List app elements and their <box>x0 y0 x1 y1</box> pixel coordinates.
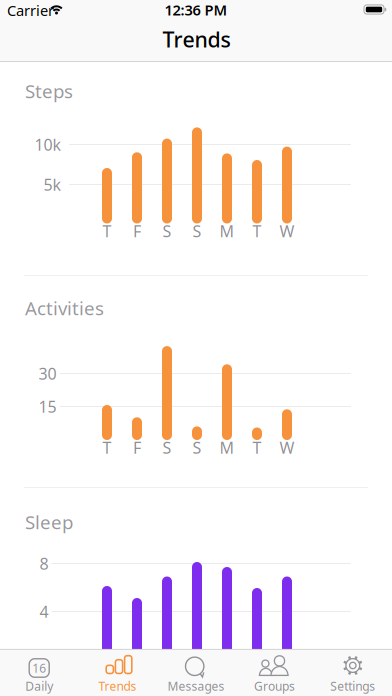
staticText: Carrier <box>7 0 54 20</box>
button[interactable]: Trends <box>78 649 157 696</box>
staticText: 5k <box>43 174 61 195</box>
staticText: 30 <box>38 363 56 384</box>
staticText: Activities <box>25 296 104 320</box>
staticText: S <box>192 220 201 242</box>
staticText: W <box>279 437 294 458</box>
staticText: 10k <box>34 134 61 155</box>
staticText: M <box>219 220 234 242</box>
staticText: S <box>162 220 171 242</box>
staticText: 16 <box>32 660 46 676</box>
staticText: M <box>219 437 234 458</box>
button[interactable]: 16 <box>0 649 78 696</box>
staticText: F <box>133 220 141 242</box>
staticText: T <box>252 437 261 458</box>
staticText: 8 <box>39 553 48 574</box>
staticText: Messages <box>167 678 224 694</box>
staticText: 4 <box>39 601 48 622</box>
button[interactable]: Messages <box>157 649 235 696</box>
staticText: Steps <box>25 79 73 103</box>
staticText: F <box>133 437 141 458</box>
staticText: S <box>162 437 171 458</box>
staticText: 15 <box>38 396 56 417</box>
staticText: Trends <box>99 678 137 694</box>
staticText: S <box>192 437 201 458</box>
staticText: Settings <box>330 678 375 694</box>
staticText: W <box>279 220 294 242</box>
button[interactable]: Groups <box>235 649 314 696</box>
staticText: T <box>252 220 261 242</box>
staticText: Sleep <box>25 510 73 534</box>
staticText: T <box>102 220 111 242</box>
staticText: 12:36 PM <box>164 0 227 19</box>
staticText: T <box>102 437 111 458</box>
button[interactable]: Settings <box>314 649 392 696</box>
staticText: Daily <box>25 678 53 694</box>
staticText: Groups <box>254 678 295 694</box>
staticText: Trends <box>162 25 230 53</box>
